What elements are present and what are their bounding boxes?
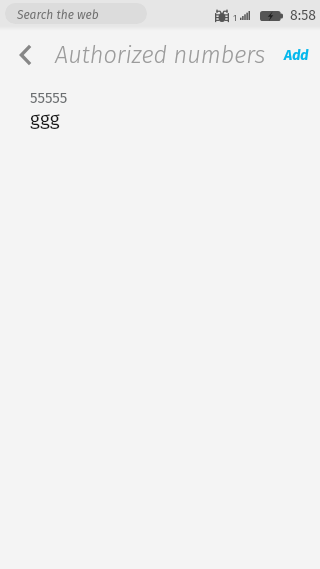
button[interactable]: Add — [274, 39, 320, 72]
staticText: Search the web — [17, 8, 99, 22]
button[interactable]: Search the web — [5, 3, 147, 24]
button[interactable]: 55555 — [0, 76, 320, 140]
staticText: Add — [284, 47, 309, 64]
staticText: ggg — [30, 107, 60, 130]
button[interactable]: Back — [0, 31, 46, 76]
staticText: 55555 — [30, 89, 68, 107]
staticText: 8:58 — [290, 7, 316, 24]
staticText: 1 — [233, 13, 237, 24]
staticText: Authorized numbers — [55, 41, 266, 69]
